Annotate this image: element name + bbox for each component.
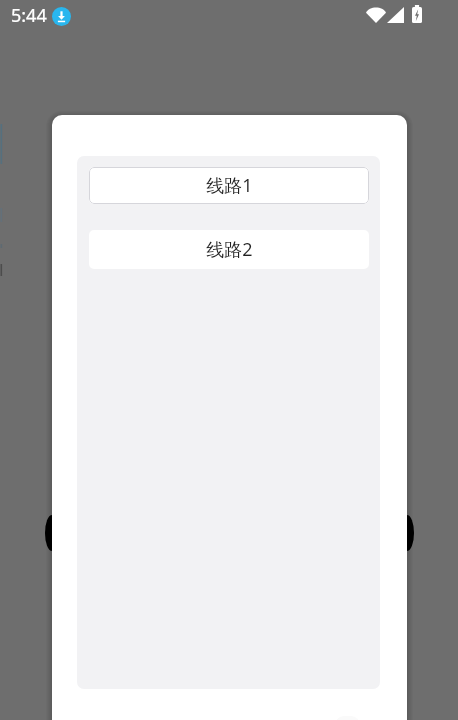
- other: Battery charging: [412, 5, 422, 23]
- other: Download: [52, 7, 71, 26]
- staticText: 线路2: [206, 237, 253, 262]
- other: Wi-Fi: [366, 6, 386, 23]
- button[interactable]: 线路2: [89, 230, 369, 269]
- button[interactable]: 线路1: [89, 167, 369, 204]
- other: Cellular signal: [387, 7, 404, 23]
- staticText: 5:44: [11, 3, 47, 28]
- staticText: 线路1: [206, 173, 253, 198]
